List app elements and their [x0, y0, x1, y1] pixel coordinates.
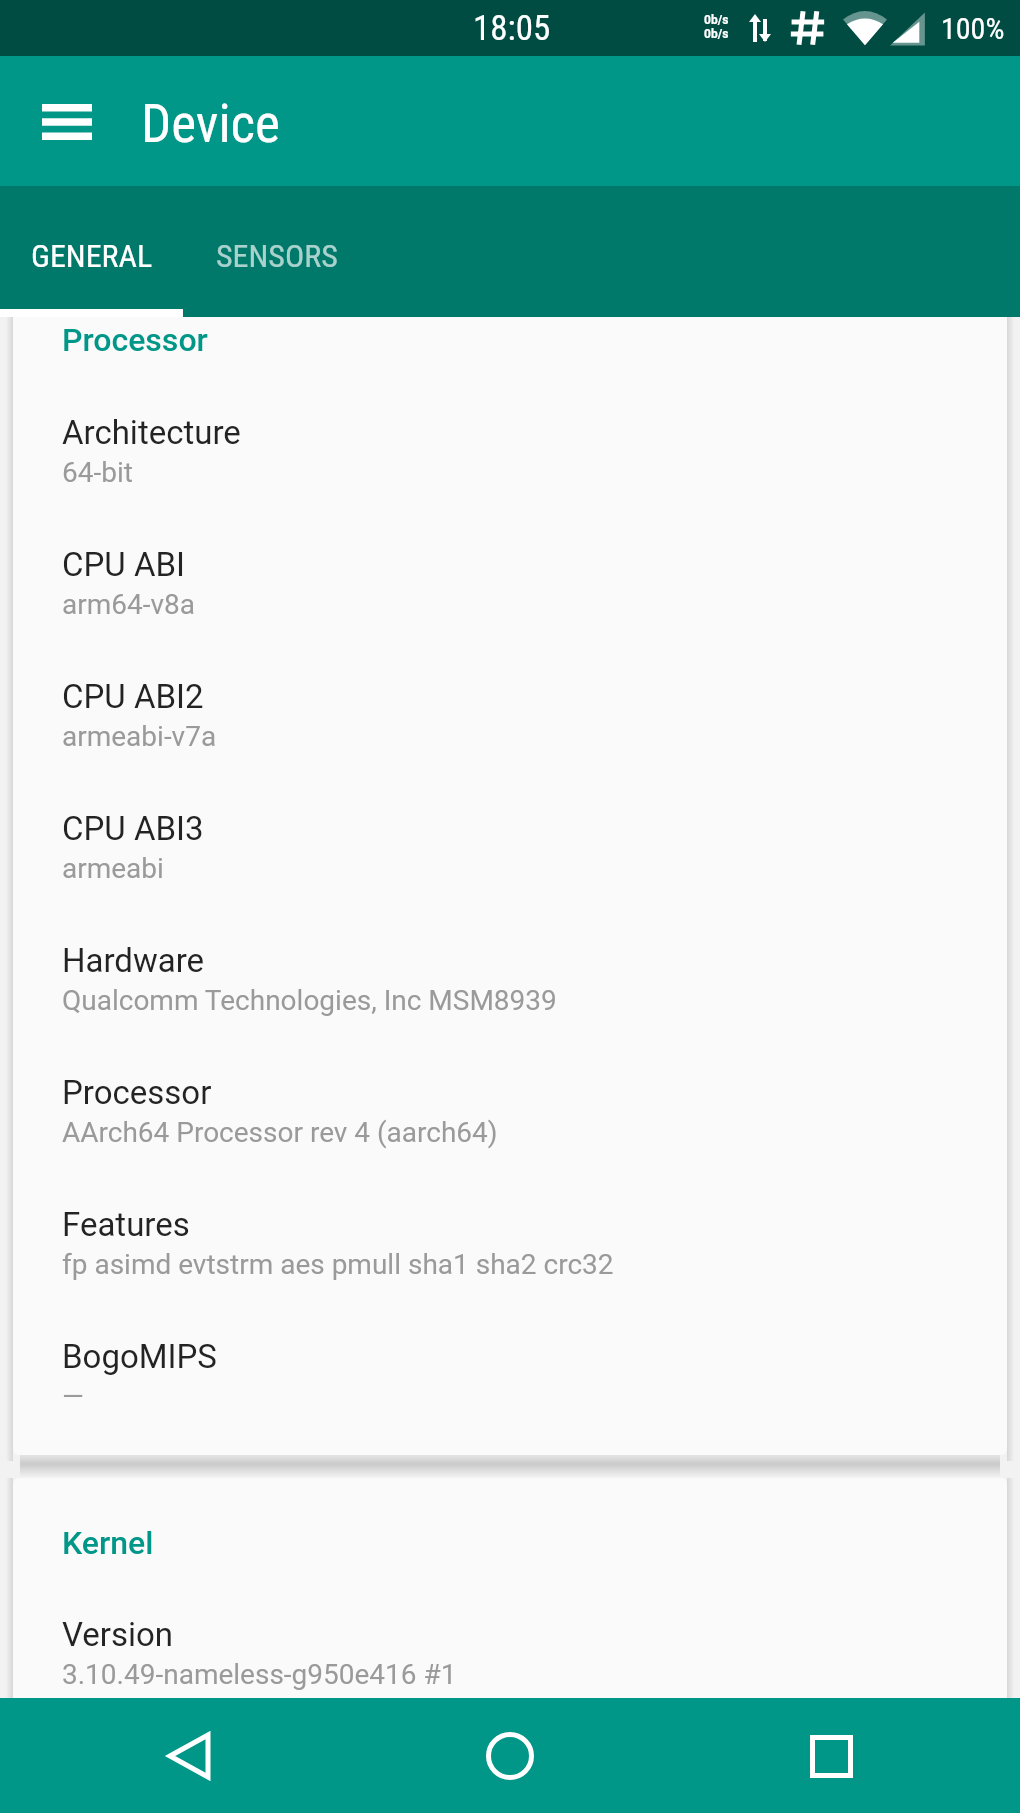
- staticText: armeabi: [62, 852, 164, 885]
- staticText: Features: [62, 1205, 190, 1246]
- button[interactable]: Back: [134, 1701, 244, 1811]
- button[interactable]: Home: [455, 1701, 565, 1811]
- staticText: AArch64 Processor rev 4 (aarch64): [62, 1116, 498, 1149]
- staticText: 18:05: [473, 8, 551, 49]
- staticText: Kernel: [62, 1524, 154, 1562]
- button[interactable]: Architecture: [13, 413, 1007, 545]
- staticText: 3.10.49-nameless-g950e416 #1: [62, 1658, 457, 1691]
- staticText: BogoMIPS: [62, 1337, 217, 1378]
- button[interactable]: CPU ABI3: [13, 809, 1007, 941]
- staticText: Qualcomm Technologies, Inc MSM8939: [62, 984, 557, 1017]
- staticText: Processor: [62, 321, 208, 359]
- button[interactable]: Hardware: [13, 941, 1007, 1073]
- staticText: 0b/s: [704, 27, 729, 41]
- staticText: Device: [141, 93, 280, 155]
- button[interactable]: GENERAL: [0, 190, 183, 321]
- staticText: arm64-v8a: [62, 588, 196, 621]
- button[interactable]: Version: [13, 1615, 1007, 1698]
- staticText: CPU ABI: [62, 545, 185, 586]
- button[interactable]: BogoMIPS: [13, 1337, 1007, 1455]
- staticText: —: [62, 1380, 84, 1413]
- button[interactable]: SENSORS: [183, 190, 371, 321]
- staticText: GENERAL: [31, 237, 153, 275]
- staticText: SENSORS: [216, 237, 338, 275]
- staticText: 0b/s: [704, 13, 729, 27]
- button[interactable]: Processor: [13, 1073, 1007, 1205]
- staticText: CPU ABI2: [62, 677, 204, 718]
- staticText: Architecture: [62, 413, 241, 454]
- staticText: Version: [62, 1615, 174, 1656]
- staticText: CPU ABI3: [62, 809, 204, 850]
- button[interactable]: Features: [13, 1205, 1007, 1337]
- staticText: Hardware: [62, 941, 205, 982]
- button[interactable]: Open navigation drawer: [22, 77, 112, 167]
- staticText: fp asimd evtstrm aes pmull sha1 sha2 crc…: [62, 1248, 614, 1281]
- button[interactable]: CPU ABI2: [13, 677, 1007, 809]
- staticText: armeabi-v7a: [62, 720, 217, 753]
- button[interactable]: Recent apps: [776, 1701, 886, 1811]
- button[interactable]: CPU ABI: [13, 545, 1007, 677]
- staticText: Processor: [62, 1073, 212, 1114]
- staticText: 64-bit: [62, 456, 133, 489]
- staticText: 100%: [941, 11, 1005, 46]
